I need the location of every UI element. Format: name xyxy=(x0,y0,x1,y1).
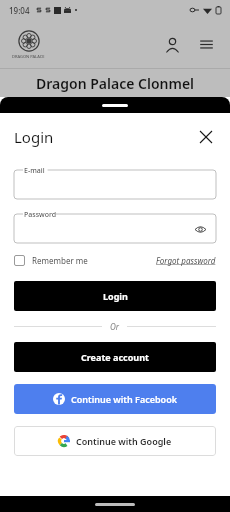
button[interactable]: Forgot password xyxy=(156,255,216,266)
staticText: E-mail xyxy=(24,166,45,176)
button[interactable]: Continue with Google xyxy=(14,426,216,456)
staticText: Continue with Google xyxy=(76,435,172,447)
button[interactable]: Create account xyxy=(14,342,216,372)
button[interactable]: Login xyxy=(14,281,216,311)
button[interactable]: Show password xyxy=(192,221,208,237)
button[interactable]: Continue with Facebook xyxy=(14,384,216,414)
staticText: Forgot password xyxy=(156,255,216,266)
staticText: DRAGON PALACE xyxy=(12,54,45,59)
staticText: Login xyxy=(14,127,54,147)
button[interactable]: Account xyxy=(160,32,184,56)
staticText: 19:04 xyxy=(9,5,30,16)
button[interactable]: Menu xyxy=(194,32,218,56)
staticText: Dragon Palace Clonmel xyxy=(36,74,195,93)
staticText: Or xyxy=(110,321,119,332)
staticText: Remember me xyxy=(32,255,88,266)
staticText: Create account xyxy=(81,351,149,363)
staticText: Continue with Facebook xyxy=(71,393,178,405)
button[interactable]: Remember me xyxy=(14,255,88,266)
staticText: Login xyxy=(103,290,128,302)
staticText: Password xyxy=(24,210,57,220)
button[interactable]: Close xyxy=(196,127,216,147)
